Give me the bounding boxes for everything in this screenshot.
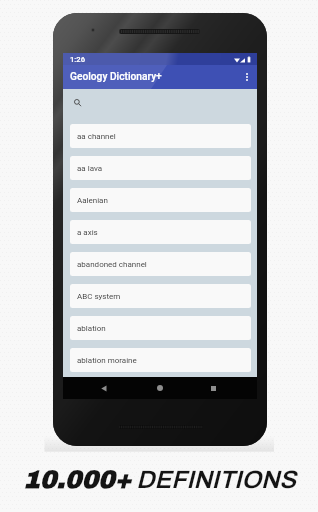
staticText: a axis	[77, 228, 98, 237]
staticText: ABC system	[77, 292, 121, 301]
button[interactable]: ablation moraine	[70, 348, 251, 372]
staticText: Aalenian	[77, 196, 108, 205]
button[interactable]: a axis	[70, 220, 251, 244]
staticText: Geology Dictionary+	[70, 71, 162, 83]
staticText: aa channel	[77, 132, 116, 141]
button[interactable]: Home	[157, 385, 163, 391]
button[interactable]: abandoned channel	[70, 252, 251, 276]
button[interactable]: Back	[101, 385, 107, 392]
staticText: abandoned channel	[77, 260, 147, 269]
staticText: ablation	[77, 324, 106, 333]
button[interactable]: ablation	[70, 316, 251, 340]
button[interactable]: aa channel	[70, 124, 251, 148]
staticText: aa lava	[77, 164, 103, 173]
button[interactable]: Search	[74, 99, 82, 107]
staticText: ablation moraine	[77, 356, 137, 365]
staticText: 1:26	[70, 55, 85, 64]
button[interactable]: More options	[246, 73, 248, 81]
button[interactable]: Aalenian	[70, 188, 251, 212]
button[interactable]: aa lava	[70, 156, 251, 180]
button[interactable]: ABC system	[70, 284, 251, 308]
staticText: 10.000+ DEFINITIONS	[23, 466, 296, 493]
